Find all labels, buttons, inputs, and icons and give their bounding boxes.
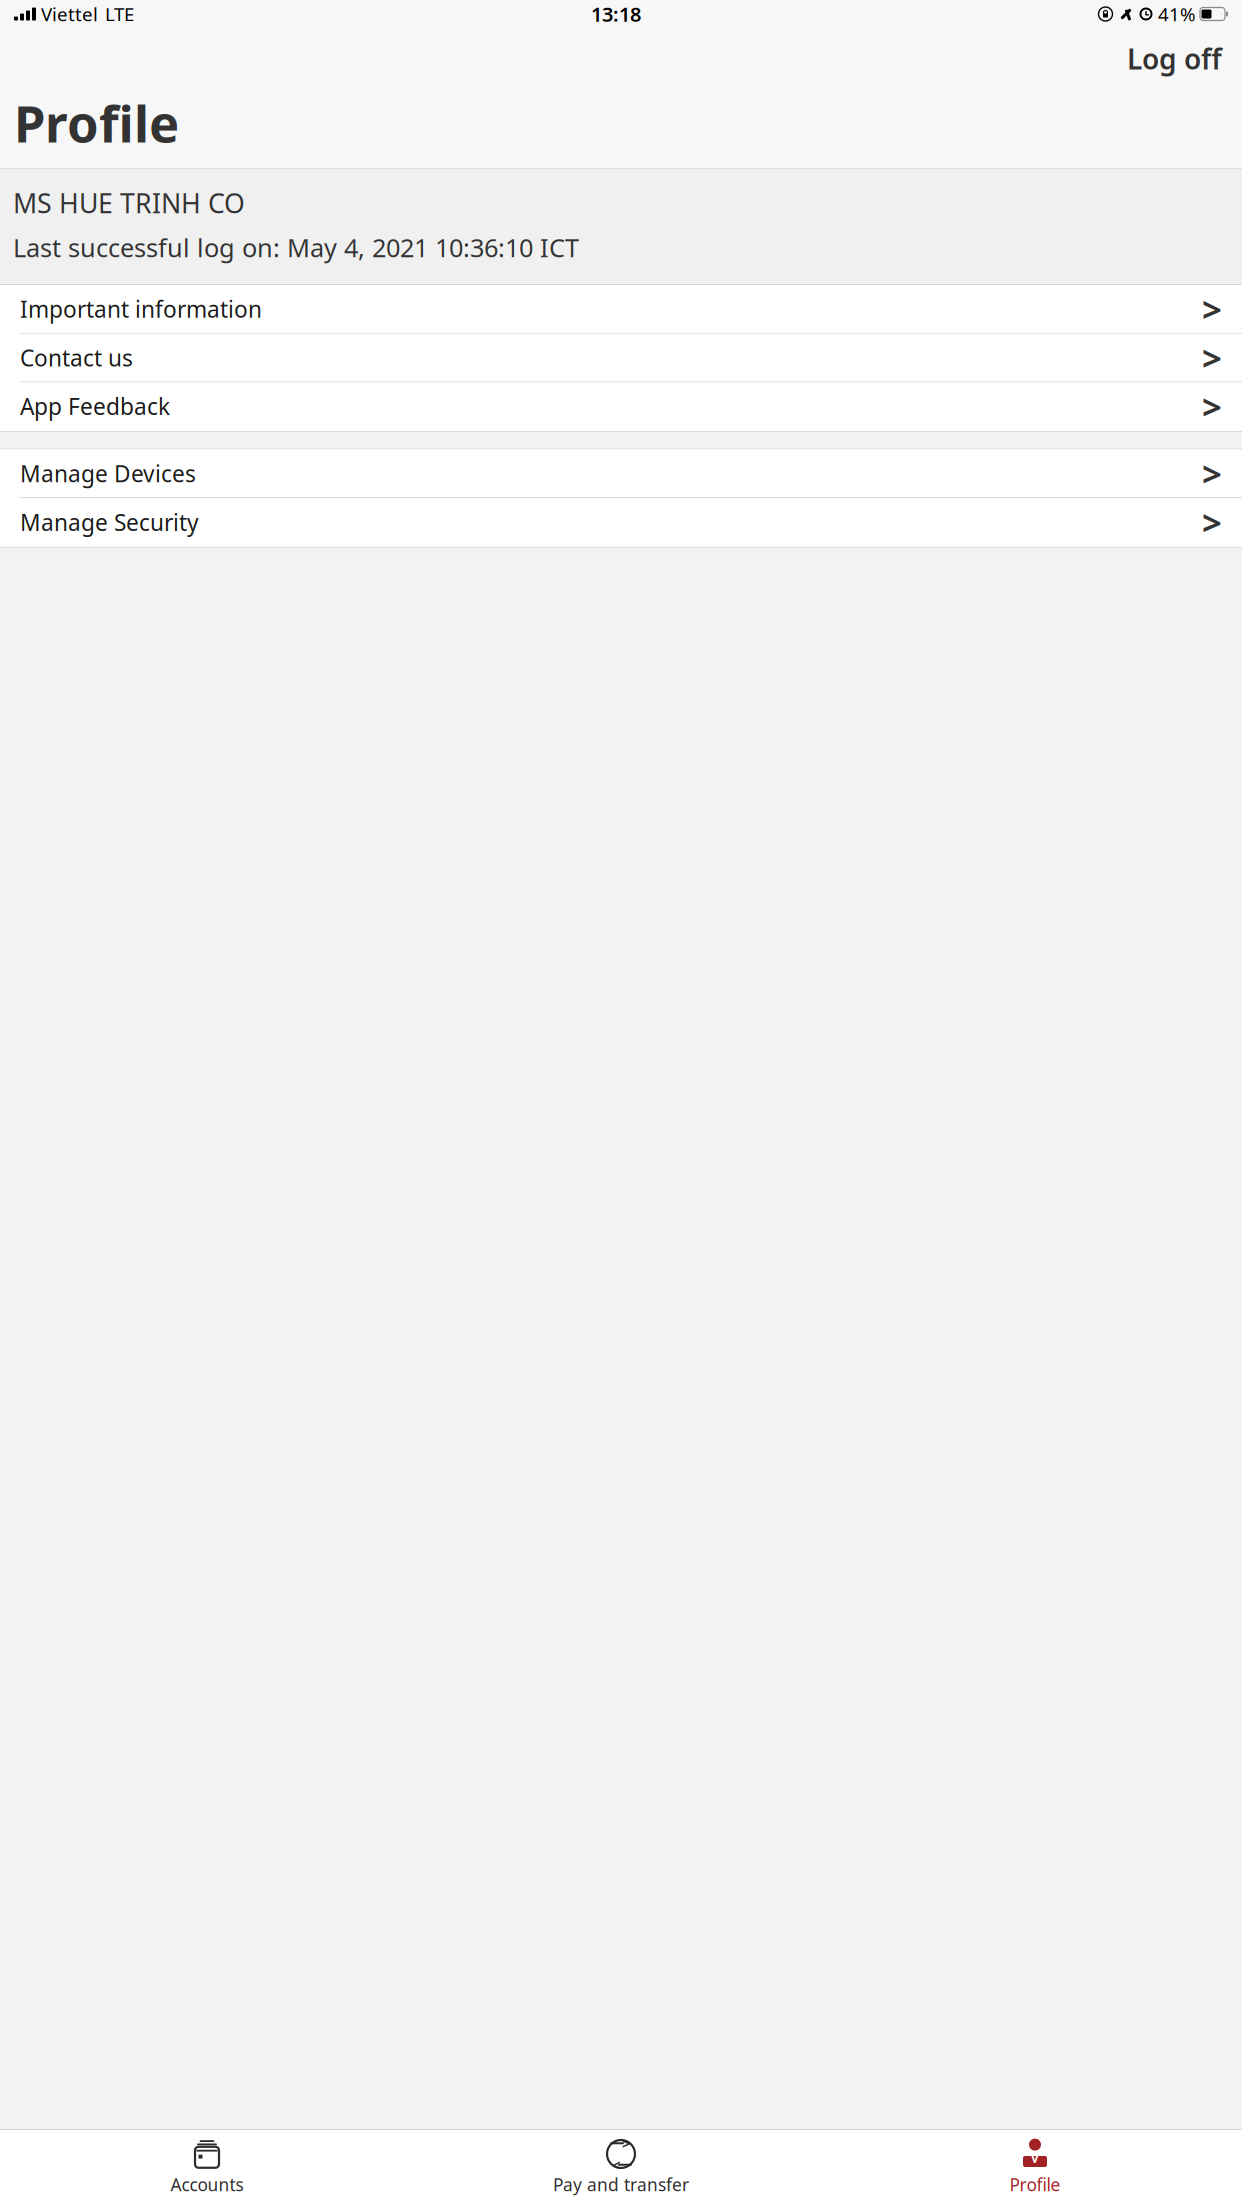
staticText: Profile — [14, 89, 179, 156]
staticText: > — [622, 2133, 630, 2153]
staticText: Profile — [1009, 2173, 1060, 2196]
staticText: Last successful log on: May 4, 2021 10:3… — [13, 231, 579, 264]
staticText: Viettel — [41, 2, 98, 26]
staticText: MS HUE TRINH CO — [13, 185, 245, 221]
button[interactable]: Manage Security — [0, 498, 1242, 547]
button[interactable]: v — [828, 2132, 1242, 2204]
button[interactable]: Important information — [0, 285, 1242, 334]
staticText: > — [1202, 450, 1222, 496]
staticText: > — [1202, 335, 1222, 381]
button[interactable]: Manage Devices — [0, 449, 1242, 498]
button[interactable]: > — [414, 2132, 828, 2204]
staticText: > — [1202, 499, 1222, 545]
button[interactable]: Log off — [1113, 34, 1236, 83]
staticText: > — [1202, 383, 1222, 429]
staticText: Accounts — [170, 2173, 243, 2196]
staticText: 41% — [1158, 2, 1196, 26]
staticText: Manage Devices — [20, 458, 196, 488]
button[interactable]: App Feedback — [0, 382, 1242, 431]
staticText: 13:18 — [591, 1, 641, 27]
staticText: Manage Security — [20, 507, 199, 537]
staticText: Important information — [20, 294, 262, 324]
button[interactable]: Accounts — [0, 2132, 414, 2204]
staticText: Contact us — [20, 343, 133, 373]
staticText: LTE — [105, 2, 134, 26]
button[interactable]: Contact us — [0, 334, 1242, 382]
staticText: Log off — [1127, 40, 1222, 77]
staticText: < — [612, 2155, 620, 2174]
staticText: Pay and transfer — [553, 2173, 689, 2196]
staticText: v — [1031, 2149, 1039, 2166]
staticText: > — [1202, 286, 1222, 332]
staticText: App Feedback — [20, 391, 170, 421]
